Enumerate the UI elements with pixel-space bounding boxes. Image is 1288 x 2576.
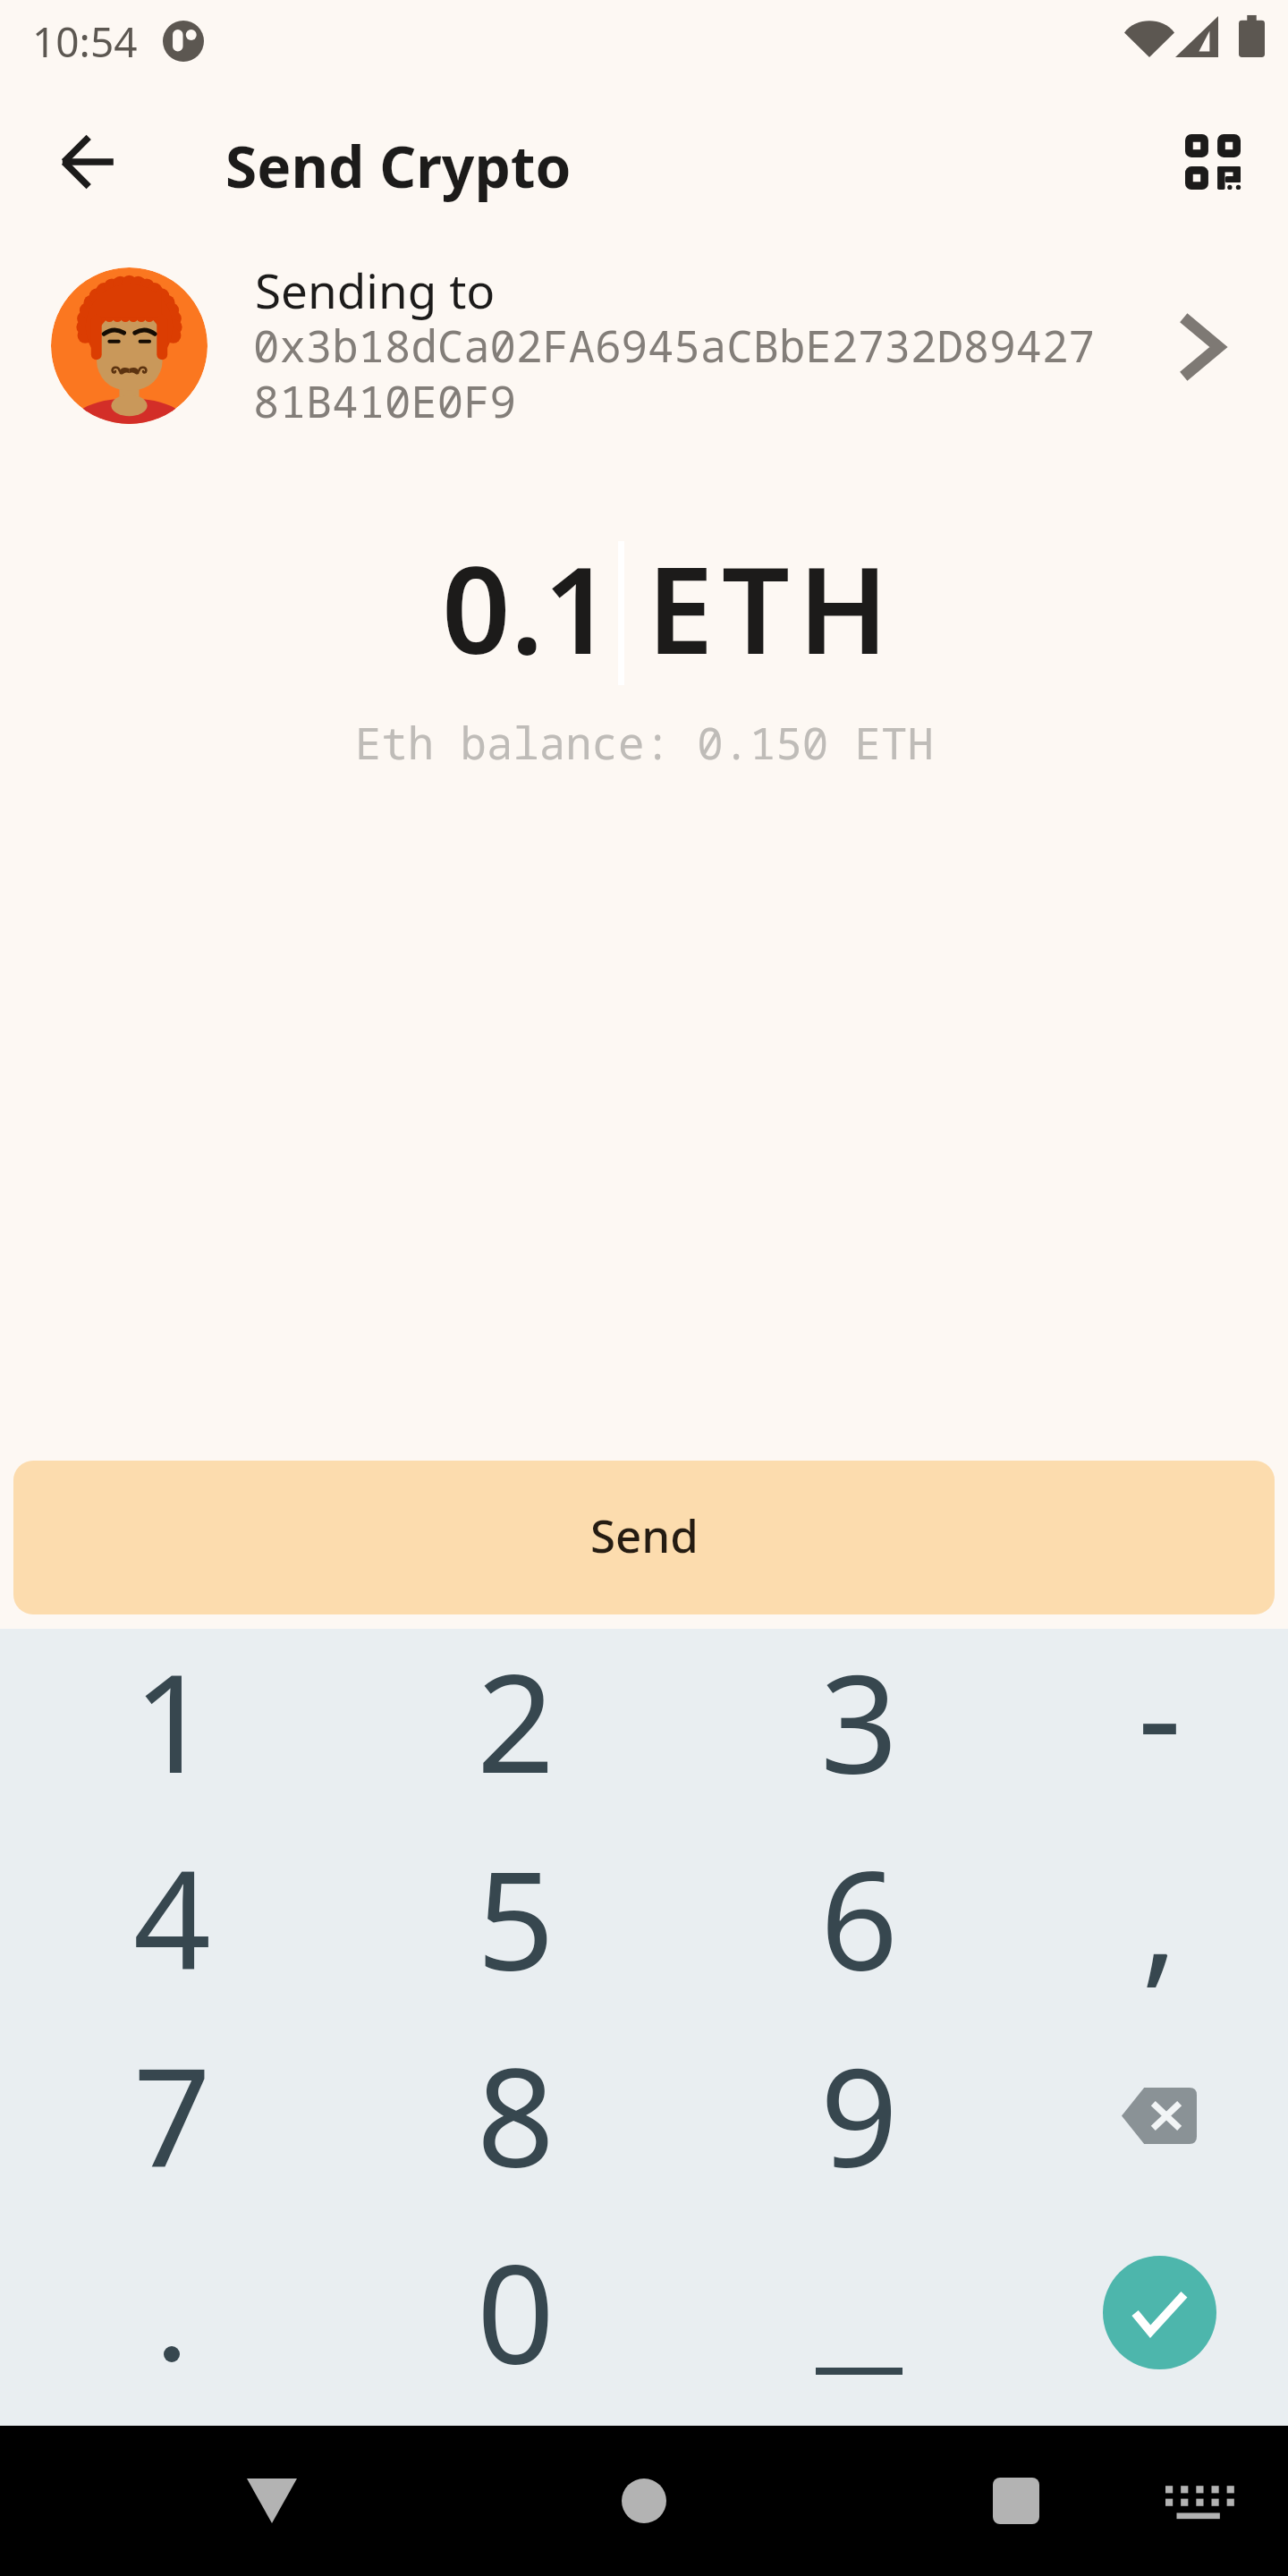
staticText: 6: [820, 1825, 898, 2010]
button[interactable]: Confirm: [1030, 2214, 1288, 2411]
staticText: 5: [477, 1825, 555, 2010]
button[interactable]: 8: [343, 2017, 687, 2214]
button[interactable]: -: [1030, 1623, 1288, 1820]
staticText: ETH: [647, 526, 897, 690]
staticText: 4: [133, 1825, 211, 2010]
staticText: 3: [820, 1628, 898, 1813]
staticText: Send: [590, 1504, 699, 1565]
button[interactable]: 0: [343, 2214, 687, 2411]
staticText: 0: [477, 2218, 555, 2403]
button[interactable]: Back: [16, 90, 159, 233]
button[interactable]: 4: [0, 1820, 343, 2017]
button[interactable]: [687, 2214, 1030, 2411]
staticText: ,: [1141, 1825, 1178, 2010]
button[interactable]: ,: [1030, 1820, 1288, 2017]
button[interactable]: Home: [555, 2426, 733, 2576]
button[interactable]: 9: [687, 2017, 1030, 2214]
staticText: Eth balance: 0.150 ETH: [355, 713, 934, 773]
staticText: 7: [133, 2021, 211, 2207]
button[interactable]: Send: [13, 1461, 1275, 1614]
button[interactable]: 1: [0, 1623, 343, 1820]
button[interactable]: Delete: [1030, 2017, 1288, 2214]
button[interactable]: 5: [343, 1820, 687, 2017]
staticText: 0.1: [442, 526, 613, 690]
button[interactable]: 7: [0, 2017, 343, 2214]
staticText: Send Crypto: [225, 127, 572, 205]
staticText: 0x3b18dCa02FA6945aCBbE2732D89427 81B410E…: [253, 316, 1095, 430]
button[interactable]: [0, 2214, 343, 2411]
button[interactable]: 6: [687, 1820, 1030, 2017]
staticText: 2: [477, 1628, 555, 1813]
button[interactable]: Keyboard: [1129, 2426, 1272, 2576]
button[interactable]: Back: [182, 2426, 361, 2576]
button[interactable]: 2: [343, 1623, 687, 1820]
other: Confirm: [1103, 2256, 1216, 2369]
button[interactable]: Sending to: [0, 229, 1288, 453]
staticText: -: [1138, 1621, 1182, 1806]
button[interactable]: Recent apps: [927, 2426, 1106, 2576]
button[interactable]: Scan QR code: [1141, 90, 1284, 233]
staticText: 1: [133, 1628, 211, 1813]
button[interactable]: 3: [687, 1623, 1030, 1820]
staticText: 8: [477, 2021, 555, 2207]
staticText: 10:54: [32, 13, 138, 70]
other: Delete: [1122, 2088, 1197, 2144]
staticText: 9: [820, 2021, 898, 2207]
staticText: Sending to: [255, 258, 496, 322]
